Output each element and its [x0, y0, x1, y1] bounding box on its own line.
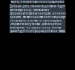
staticText: Ждите, ответим вам после праздников [10, 0, 64, 3]
staticText: Добрый день, стоимость доставки будет ми… [9, 4, 65, 33]
